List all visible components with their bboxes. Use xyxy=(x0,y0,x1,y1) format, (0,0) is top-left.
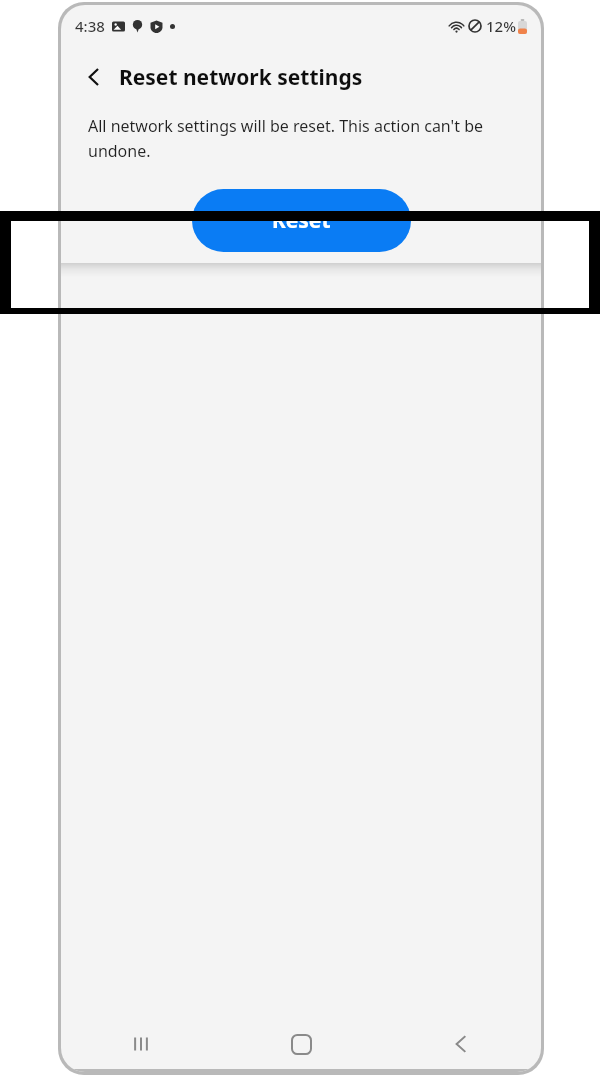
button[interactable]: Recent apps xyxy=(61,1016,221,1072)
staticText: 12% xyxy=(486,16,516,36)
staticText: Reset xyxy=(272,206,331,235)
button[interactable]: Back xyxy=(77,60,111,94)
button[interactable]: Back xyxy=(381,1016,541,1072)
staticText: All network settings will be reset. This… xyxy=(88,115,517,161)
staticText: Reset network settings xyxy=(119,63,363,92)
button[interactable]: Home xyxy=(221,1016,381,1072)
staticText: 4:38 xyxy=(75,16,105,36)
button[interactable]: Reset xyxy=(192,189,411,252)
